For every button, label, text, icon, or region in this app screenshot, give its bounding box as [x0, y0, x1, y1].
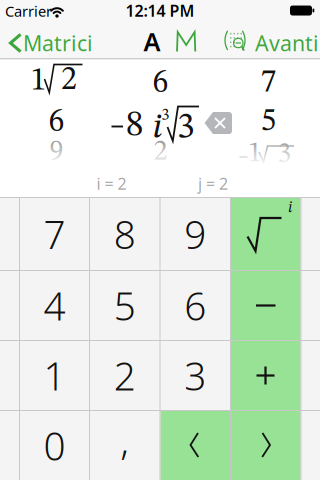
staticText: Avanti [255, 29, 319, 57]
button[interactable]: A [140, 25, 164, 58]
button[interactable]: Root [231, 198, 300, 270]
staticText: Carrier [5, 1, 52, 21]
button[interactable]: Previous element [160, 411, 230, 480]
staticText: 3 [177, 110, 195, 146]
button[interactable]: 0 [19, 410, 89, 480]
staticText: 9 [184, 208, 206, 260]
button[interactable]: 7 [19, 199, 89, 269]
button[interactable]: Avanti [252, 29, 320, 57]
staticText: 6 [184, 280, 206, 331]
staticText: 6 [152, 67, 168, 99]
button[interactable]: Delete [204, 111, 234, 135]
button[interactable]: 8 [90, 199, 160, 269]
button[interactable]: 2 [90, 340, 160, 410]
staticText: 5 [260, 106, 276, 138]
button[interactable]: 6 [160, 270, 230, 340]
staticText: 7 [43, 208, 65, 260]
staticText: 2 [114, 350, 136, 401]
staticText: 8 [114, 208, 136, 260]
button[interactable]: 5 [90, 270, 160, 340]
button[interactable]: Matrici [2, 28, 106, 58]
staticText: 6 [48, 107, 64, 139]
button[interactable]: 1 [19, 340, 89, 410]
button[interactable]: 3 [160, 340, 230, 410]
staticText: 1 [248, 140, 262, 168]
staticText: 0 [43, 420, 65, 471]
staticText: 1 [30, 65, 46, 97]
staticText: i [152, 110, 162, 146]
button[interactable]: Matrix [172, 28, 200, 56]
staticText: 5 [114, 280, 136, 331]
staticText: 9 [49, 138, 63, 166]
staticText: 2 [61, 64, 77, 96]
staticText: 2 [153, 138, 167, 166]
button[interactable]: , [90, 405, 160, 475]
staticText: 4 [43, 280, 65, 331]
staticText: 1 [43, 350, 65, 401]
staticText: 3 [277, 141, 291, 169]
button[interactable]: Plus [231, 341, 300, 410]
button[interactable]: Minus [231, 271, 300, 340]
button[interactable]: Next element [231, 411, 300, 480]
staticText: 12:14 PM [125, 0, 194, 21]
staticText: i [288, 200, 292, 216]
staticText: A [143, 25, 160, 58]
staticText: 3 [184, 350, 206, 401]
button[interactable]: 9 [160, 199, 230, 269]
staticText: j = 2 [198, 173, 228, 194]
button[interactable]: 4 [19, 270, 89, 340]
staticText: , [120, 414, 129, 466]
staticText: i = 2 [96, 173, 126, 194]
button[interactable]: Zoom out [217, 30, 249, 55]
staticText: Matrici [23, 29, 93, 57]
staticText: 8 [126, 108, 144, 144]
staticText: 7 [260, 67, 276, 99]
staticText: 3 [161, 107, 169, 124]
